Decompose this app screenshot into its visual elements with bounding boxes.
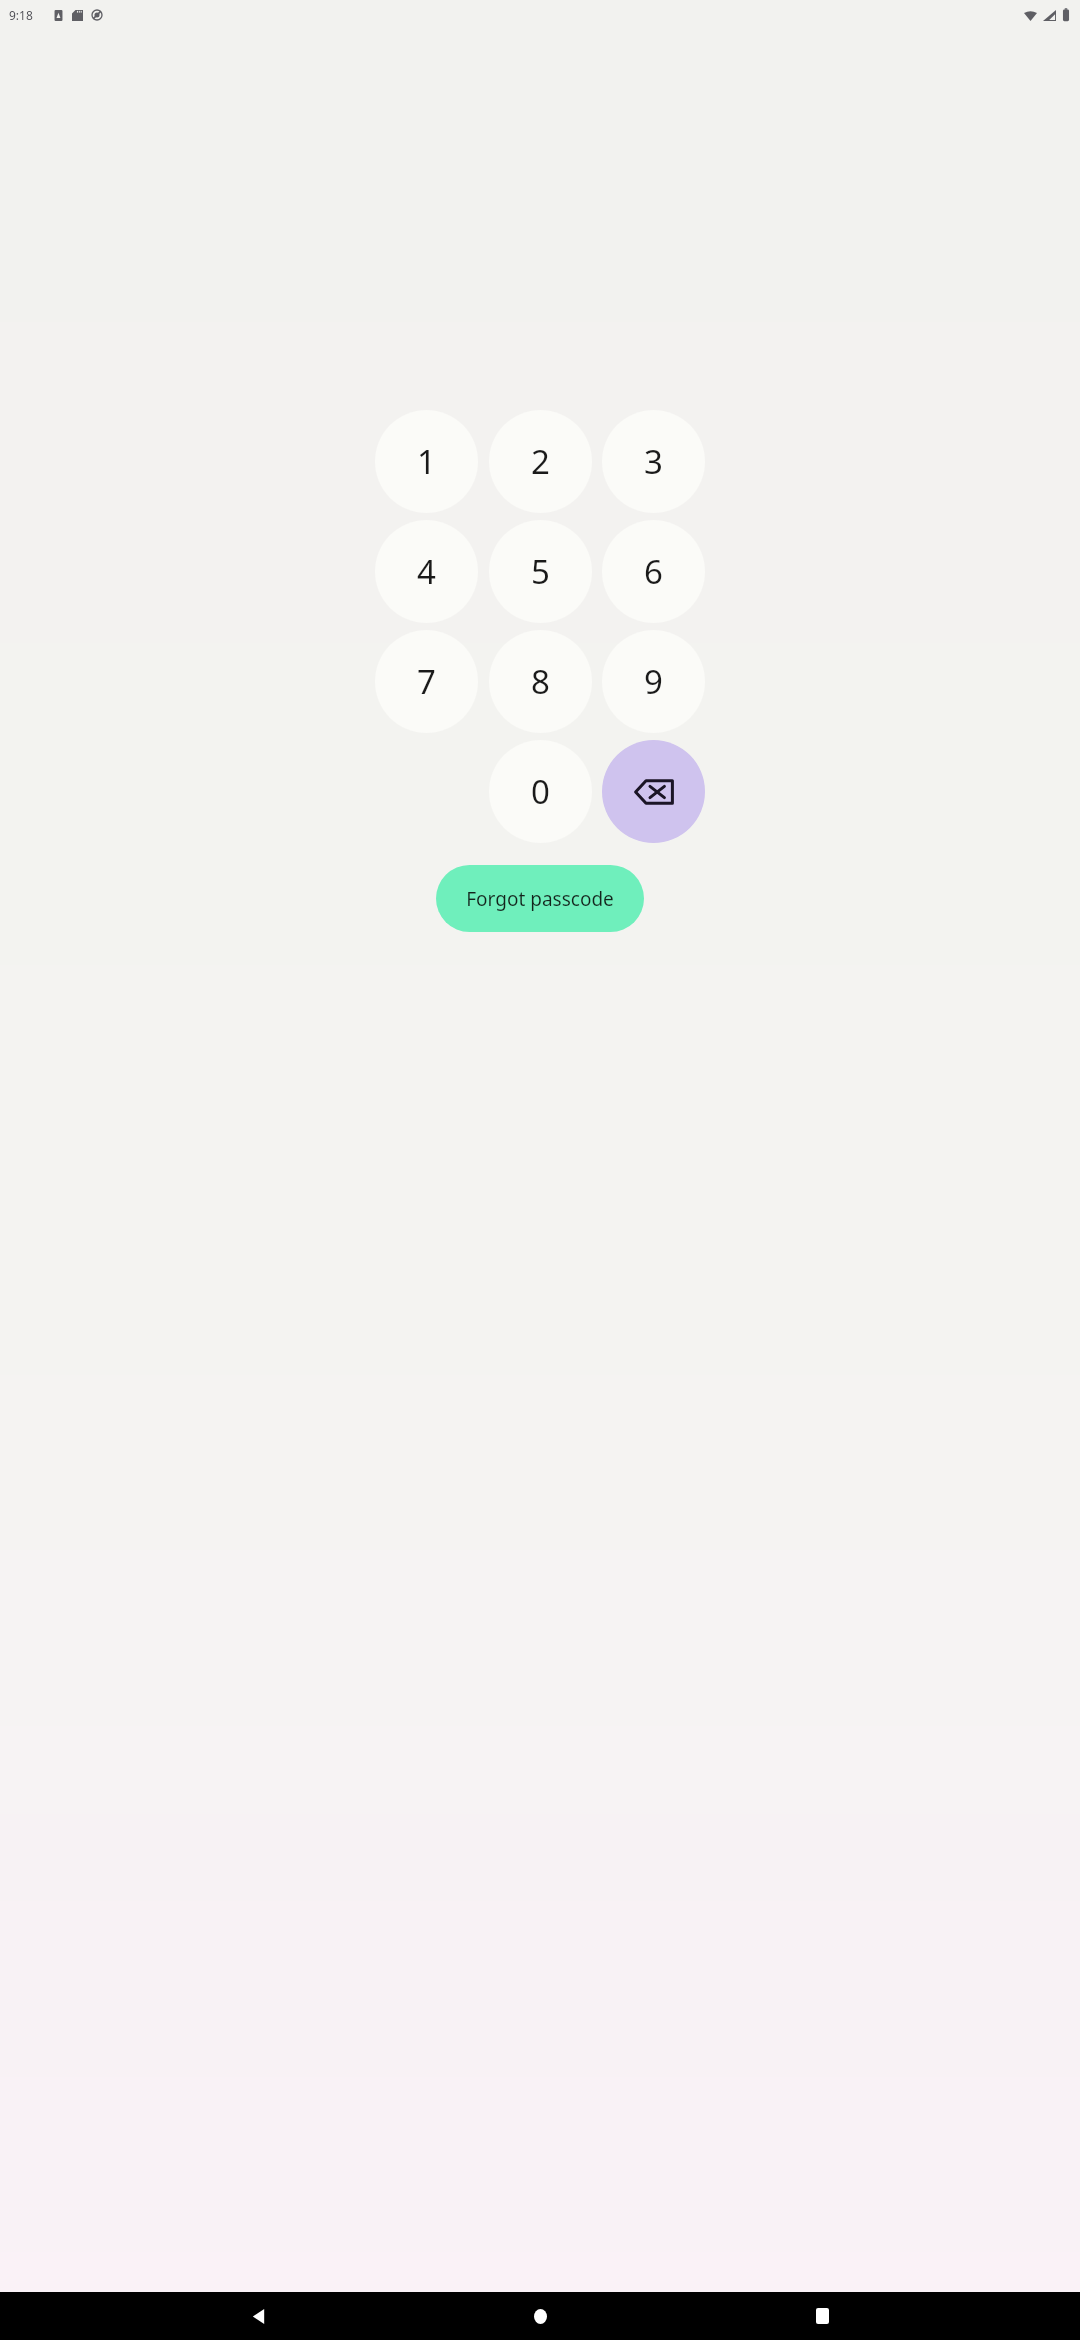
staticText: 7 — [417, 659, 436, 704]
button[interactable]: Forgot passcode — [436, 865, 644, 932]
staticText: 8 — [531, 659, 550, 704]
button[interactable]: 4 — [375, 520, 478, 623]
button[interactable]: Backspace — [602, 740, 705, 843]
staticText: 0 — [531, 769, 550, 814]
button[interactable]: 9 — [602, 630, 705, 733]
button[interactable]: 8 — [489, 630, 592, 733]
button[interactable]: 5 — [489, 520, 592, 623]
button[interactable]: 1 — [375, 410, 478, 513]
staticText: 2 — [531, 439, 550, 484]
staticText: 6 — [644, 549, 663, 594]
button[interactable]: Home — [516, 2292, 564, 2340]
button[interactable]: 7 — [375, 630, 478, 733]
staticText: 4 — [417, 549, 436, 594]
staticText: 1 — [417, 439, 436, 484]
staticText: 3 — [644, 439, 663, 484]
button[interactable]: Back — [234, 2292, 282, 2340]
button[interactable]: 2 — [489, 410, 592, 513]
button[interactable]: Recent apps — [798, 2292, 846, 2340]
staticText: 9:18 — [9, 7, 33, 23]
staticText: Forgot passcode — [466, 886, 614, 912]
staticText: 9 — [644, 659, 663, 704]
button[interactable]: 0 — [489, 740, 592, 843]
staticText: 5 — [531, 549, 550, 594]
button[interactable]: 3 — [602, 410, 705, 513]
button[interactable]: 6 — [602, 520, 705, 623]
